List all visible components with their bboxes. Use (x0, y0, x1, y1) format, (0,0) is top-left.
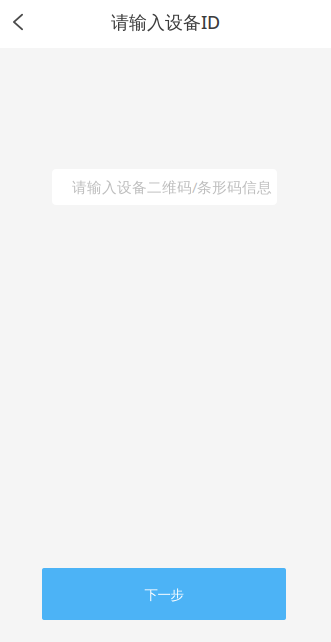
button[interactable]: Back (0, 0, 36, 48)
button[interactable]: 下一步 (42, 568, 286, 620)
button[interactable]: 请输入设备二维码/条形码信息 (52, 169, 277, 205)
staticText: 下一步 (144, 586, 183, 603)
staticText: 请输入设备ID (111, 10, 220, 34)
staticText: 请输入设备二维码/条形码信息 (72, 177, 272, 197)
